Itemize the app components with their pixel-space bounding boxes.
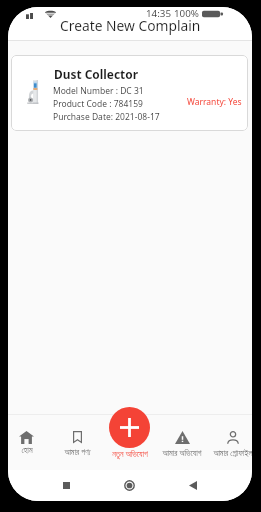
button[interactable]: আমার পণ্য (51, 414, 103, 470)
button[interactable]: Dust Collector (11, 55, 248, 131)
staticText: Model Number : DC 31 (53, 85, 144, 97)
staticText: আমার প্রোফাইল (213, 447, 252, 458)
staticText: Dust Collector (54, 66, 138, 82)
button[interactable]: হোম (8, 414, 52, 470)
staticText: Product Code : 784159 (53, 98, 143, 110)
staticText: আমার অভিযোগ (162, 447, 202, 458)
other: Back (189, 481, 197, 490)
staticText: হোম (21, 447, 33, 455)
staticText: 14:35 (146, 7, 172, 20)
staticText: আমার পণ্য (64, 446, 91, 457)
staticText: 100% (174, 7, 199, 20)
staticText: Create New Complain (60, 16, 201, 35)
staticText: Purchase Date: 2021-08-17 (53, 111, 160, 123)
staticText: Warranty: Yes (187, 96, 242, 108)
other: Home (124, 480, 135, 491)
staticText: নতুন অভিযোগ (112, 448, 148, 459)
button[interactable]: আমার প্রোফাইল (207, 414, 252, 470)
button[interactable]: নতুন অভিযোগ (104, 414, 156, 470)
button[interactable]: Add new complaint (109, 407, 150, 448)
button[interactable]: আমার অভিযোগ (156, 414, 208, 470)
